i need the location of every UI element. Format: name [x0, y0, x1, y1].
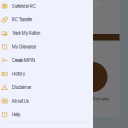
- staticText: Surrender RC: [12, 3, 36, 9]
- staticText: My Grievance: [12, 44, 36, 49]
- staticText: RC Transfer: [12, 17, 32, 22]
- button[interactable]: Track My Ration: [0, 26, 93, 40]
- staticText: History: [12, 71, 25, 77]
- button[interactable]: Create MPIN: [0, 53, 93, 67]
- button[interactable]: Disclaimer: [0, 81, 93, 94]
- button[interactable]: My Grievance: [0, 40, 93, 54]
- staticText: Track My Ration: [12, 30, 40, 36]
- button[interactable]: About Us: [0, 94, 93, 108]
- button[interactable]: Surrender RC: [0, 0, 93, 13]
- button[interactable]: History: [0, 67, 93, 81]
- staticText: Create MPIN: [12, 58, 35, 63]
- staticText: About Us: [12, 98, 29, 104]
- staticText: Help: [12, 112, 21, 117]
- staticText: Remarks: [93, 96, 109, 101]
- button[interactable]: Help: [0, 108, 93, 121]
- button[interactable]: RC Transfer: [0, 13, 93, 26]
- staticText: Disclaimer: [12, 85, 31, 90]
